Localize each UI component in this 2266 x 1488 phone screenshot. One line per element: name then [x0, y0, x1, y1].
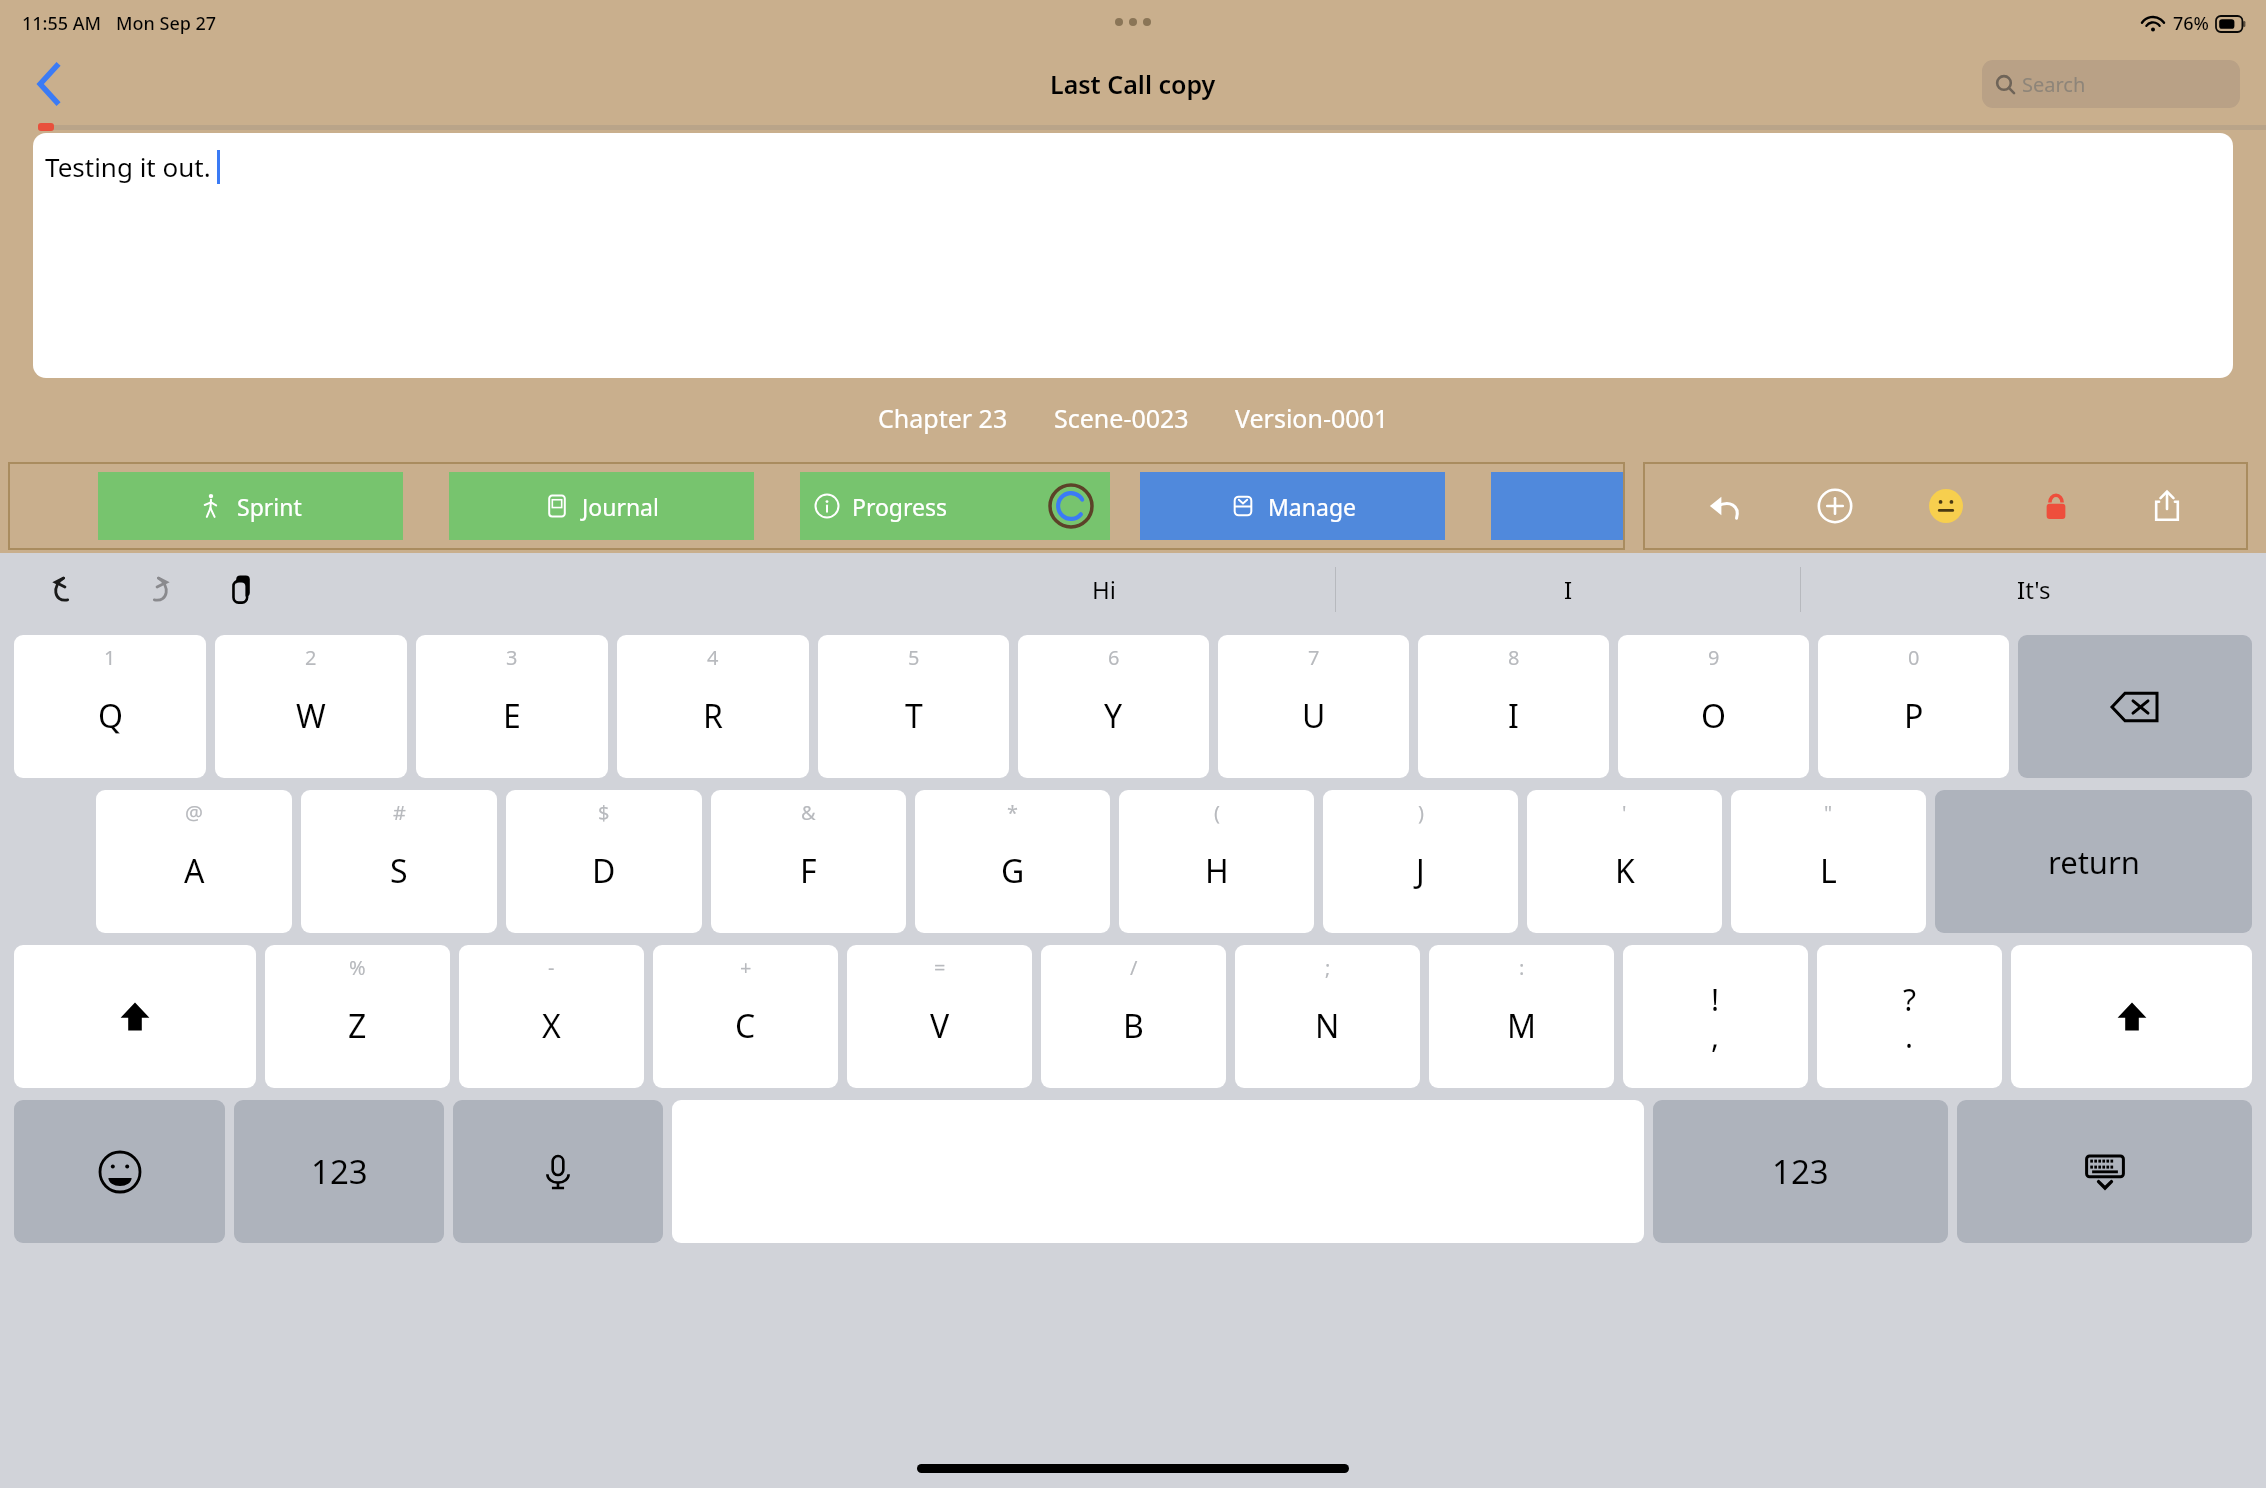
button[interactable]: :	[1429, 945, 1614, 1088]
button[interactable]: Undo	[1694, 475, 1756, 537]
staticText: 9	[1708, 644, 1720, 671]
staticText: F	[800, 849, 817, 893]
button[interactable]: Chapter 23	[878, 401, 1008, 435]
staticText: 6	[1108, 644, 1120, 671]
button[interactable]: Hi	[871, 553, 1336, 625]
button[interactable]: ?	[1817, 945, 2002, 1088]
button[interactable]: Scene-0023	[1054, 401, 1189, 435]
button[interactable]: Shift	[2011, 945, 2252, 1088]
button[interactable]: Add	[1804, 475, 1866, 537]
button[interactable]: Refresh	[1048, 483, 1094, 529]
staticText: Z	[348, 1004, 367, 1048]
staticText: J	[1416, 849, 1425, 893]
staticText: Q	[98, 694, 123, 738]
button[interactable]: ;	[1235, 945, 1420, 1088]
staticText: 5	[908, 644, 920, 671]
button[interactable]: (	[1119, 790, 1314, 933]
staticText: R	[703, 694, 723, 738]
staticText: )	[1418, 799, 1424, 826]
button[interactable]: 8	[1418, 635, 1609, 778]
staticText: I	[1508, 694, 1519, 738]
button[interactable]: *	[915, 790, 1110, 933]
button[interactable]: @	[96, 790, 292, 933]
staticText: .	[1905, 1016, 1914, 1057]
staticText: Search	[2022, 71, 2086, 98]
button[interactable]: Back	[22, 57, 76, 111]
button[interactable]: 123	[1653, 1100, 1948, 1243]
button[interactable]: Share	[2136, 475, 2198, 537]
button[interactable]: 9	[1618, 635, 1809, 778]
staticText: +	[740, 954, 752, 981]
button[interactable]: "	[1731, 790, 1926, 933]
staticText: X	[542, 1004, 561, 1048]
button[interactable]: %	[265, 945, 450, 1088]
button[interactable]: 2	[215, 635, 407, 778]
button[interactable]: Manage	[1140, 472, 1445, 540]
button[interactable]: 0	[1818, 635, 2009, 778]
button[interactable]: #	[301, 790, 497, 933]
button[interactable]: Shift	[14, 945, 256, 1088]
staticText: *	[1007, 799, 1019, 826]
staticText: G	[1001, 849, 1025, 893]
button[interactable]: Paste	[216, 562, 270, 616]
button[interactable]: Hide keyboard	[1957, 1100, 2252, 1243]
button[interactable]: !	[1623, 945, 1808, 1088]
staticText: E	[503, 694, 521, 738]
button[interactable]: I	[1336, 553, 1801, 625]
button[interactable]: It's	[1801, 553, 2266, 625]
staticText: ,	[1711, 1016, 1720, 1057]
staticText: L	[1820, 849, 1837, 893]
button[interactable]: 123	[234, 1100, 444, 1243]
button[interactable]: -	[459, 945, 644, 1088]
button[interactable]: =	[847, 945, 1032, 1088]
button[interactable]: &	[711, 790, 906, 933]
staticText: Hi	[1092, 573, 1116, 606]
staticText: Sprint	[237, 491, 302, 522]
staticText: ;	[1325, 954, 1331, 981]
staticText: 4	[707, 644, 719, 671]
button[interactable]: Lock	[2025, 475, 2087, 537]
button[interactable]: Backspace	[2018, 635, 2252, 778]
staticText: H	[1205, 849, 1229, 893]
staticText: $	[598, 799, 610, 826]
button[interactable]: '	[1527, 790, 1722, 933]
button[interactable]: Progress	[800, 472, 1110, 540]
button[interactable]: +	[653, 945, 838, 1088]
staticText: It's	[2017, 573, 2051, 606]
staticText: 2	[305, 644, 317, 671]
button[interactable]: Testing it out.	[33, 133, 2233, 378]
button[interactable]: 7	[1218, 635, 1409, 778]
button[interactable]: Search	[1982, 60, 2240, 108]
staticText: T	[905, 694, 923, 738]
staticText: =	[934, 954, 946, 981]
button[interactable]: $	[506, 790, 702, 933]
staticText: return	[2048, 841, 2140, 883]
staticText: N	[1315, 1004, 1340, 1048]
button[interactable]: Emoji	[14, 1100, 225, 1243]
staticText: A	[184, 849, 205, 893]
button[interactable]: Dictation	[453, 1100, 663, 1243]
button[interactable]: 4	[617, 635, 809, 778]
staticText: -	[548, 954, 555, 981]
button[interactable]: Redo	[128, 562, 182, 616]
button[interactable]: /	[1041, 945, 1226, 1088]
button[interactable]: Undo	[40, 562, 94, 616]
button[interactable]: return	[1935, 790, 2252, 933]
button[interactable]: 6	[1018, 635, 1209, 778]
staticText: '	[1622, 799, 1627, 826]
staticText: D	[592, 849, 616, 893]
staticText: K	[1615, 849, 1635, 893]
button[interactable]: Sprint	[98, 472, 403, 540]
staticText: V	[930, 1004, 950, 1048]
button[interactable]: 1	[14, 635, 206, 778]
staticText: :	[1519, 954, 1525, 981]
button[interactable]: 3	[416, 635, 608, 778]
button[interactable]: Journal	[449, 472, 754, 540]
button[interactable]: Mood	[1915, 475, 1977, 537]
button[interactable]: 5	[818, 635, 1009, 778]
staticText: Journal	[582, 491, 659, 522]
button[interactable]: Version-0001	[1235, 401, 1389, 435]
button[interactable]: )	[1323, 790, 1518, 933]
